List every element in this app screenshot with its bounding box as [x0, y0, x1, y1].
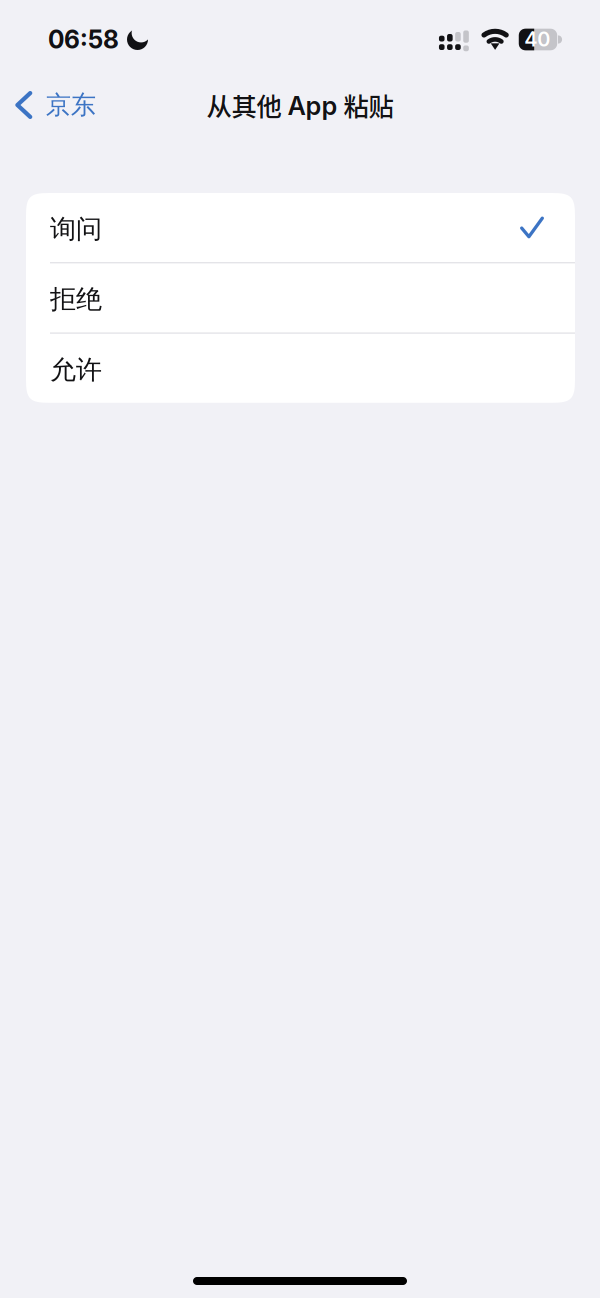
staticText: 40: [524, 27, 550, 51]
staticText: 京东: [46, 89, 96, 121]
staticText: 询问: [50, 213, 102, 245]
staticText: 从其他 App 粘贴: [206, 87, 393, 123]
staticText: 06:58: [48, 25, 119, 54]
button[interactable]: 询问: [26, 193, 575, 262]
button[interactable]: 拒绝: [26, 263, 575, 332]
staticText: 拒绝: [50, 283, 102, 316]
button[interactable]: 京东: [0, 79, 110, 131]
button[interactable]: 允许: [26, 334, 575, 403]
staticText: 允许: [50, 353, 102, 386]
